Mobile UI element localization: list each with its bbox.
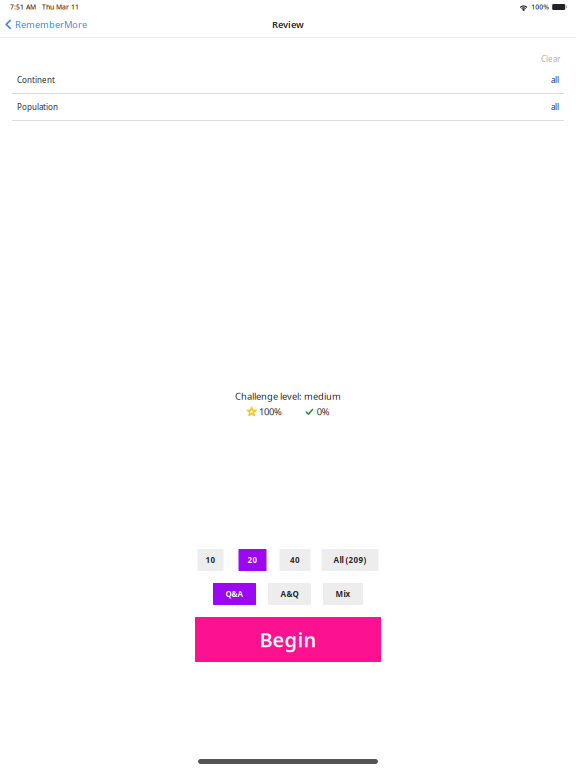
staticText: All (209) [333,555,366,565]
button[interactable]: RememberMore [0,15,93,33]
button[interactable]: Population [0,94,576,121]
staticText: all [551,75,559,85]
staticText: Thu Mar 11 [42,3,79,11]
button[interactable]: Continent [0,67,576,94]
button[interactable]: Mix [323,583,363,605]
staticText: 40 [290,555,300,565]
staticText: Population [17,102,58,112]
button[interactable]: 10 [197,549,223,571]
staticText: Challenge level: medium [235,390,341,402]
staticText: Continent [17,75,55,85]
staticText: Clear [541,54,560,64]
staticText: A&Q [280,589,298,599]
staticText: 100% [531,3,549,11]
button[interactable]: Clear [541,51,576,67]
staticText: 10 [205,555,215,565]
staticText: 0% [317,405,330,418]
staticText: Q&A [225,589,243,599]
staticText: 100% [259,405,282,418]
staticText: 7:51 AM [10,3,36,11]
staticText: 20 [247,555,257,565]
staticText: all [551,102,559,112]
button[interactable]: Begin [195,617,381,662]
button[interactable]: 20 [238,549,266,571]
button[interactable]: 40 [279,549,310,571]
staticText: Review [272,18,304,31]
staticText: Mix [335,589,350,599]
button[interactable]: Q&A [213,583,256,605]
button[interactable]: A&Q [268,583,311,605]
button[interactable]: All (209) [321,549,378,571]
staticText: Begin [259,626,316,653]
staticText: RememberMore [15,18,87,31]
